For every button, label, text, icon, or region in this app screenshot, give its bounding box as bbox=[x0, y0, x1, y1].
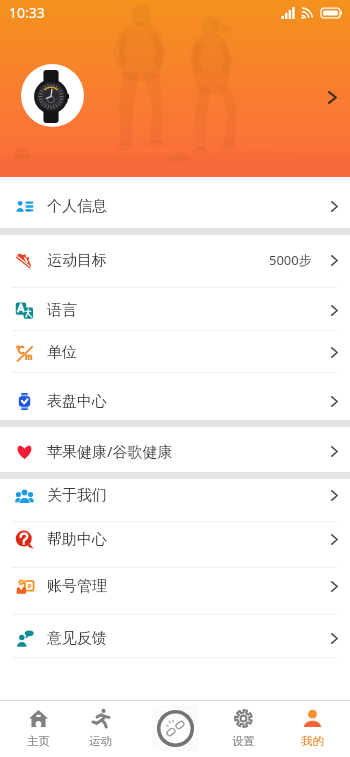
staticText: 单位 bbox=[47, 343, 77, 362]
button[interactable]: Watch device bbox=[21, 64, 84, 127]
button[interactable]: 语言 bbox=[0, 287, 350, 330]
button[interactable]: 设置 bbox=[215, 709, 271, 748]
button[interactable]: 表盘中心 bbox=[0, 372, 350, 420]
button[interactable]: 运动 bbox=[72, 709, 128, 748]
button[interactable]: 关于我们 bbox=[0, 479, 350, 521]
staticText: 账号管理 bbox=[47, 577, 107, 596]
staticText: 设置 bbox=[232, 734, 255, 748]
button[interactable]: 运动目标 bbox=[0, 235, 350, 287]
button[interactable]: 主页 bbox=[10, 709, 66, 748]
button[interactable]: 账号管理 bbox=[0, 567, 350, 614]
button[interactable]: 单位 bbox=[0, 330, 350, 372]
button[interactable]: 我的 bbox=[284, 709, 340, 748]
staticText: 主页 bbox=[27, 734, 50, 748]
staticText: 运动 bbox=[89, 734, 112, 748]
staticText: 我的 bbox=[301, 734, 324, 748]
staticText: 运动目标 bbox=[47, 251, 107, 270]
staticText: 苹果健康/谷歌健康 bbox=[47, 441, 173, 461]
button[interactable]: 苹果健康/谷歌健康 bbox=[0, 427, 350, 472]
staticText: 语言 bbox=[47, 301, 77, 320]
staticText: 5000步 bbox=[269, 251, 312, 269]
staticText: 意见反馈 bbox=[47, 629, 107, 648]
staticText: 个人信息 bbox=[47, 197, 107, 216]
staticText: 表盘中心 bbox=[47, 392, 107, 411]
button[interactable]: 意见反馈 bbox=[0, 614, 350, 657]
staticText: 帮助中心 bbox=[47, 530, 107, 549]
staticText: 10:33 bbox=[9, 3, 45, 22]
button[interactable]: 个人信息 bbox=[0, 177, 350, 228]
button[interactable]: Disconnect device bbox=[152, 705, 198, 751]
button[interactable]: Device details bbox=[320, 85, 344, 109]
button[interactable]: 帮助中心 bbox=[0, 521, 350, 567]
staticText: 关于我们 bbox=[47, 486, 107, 505]
